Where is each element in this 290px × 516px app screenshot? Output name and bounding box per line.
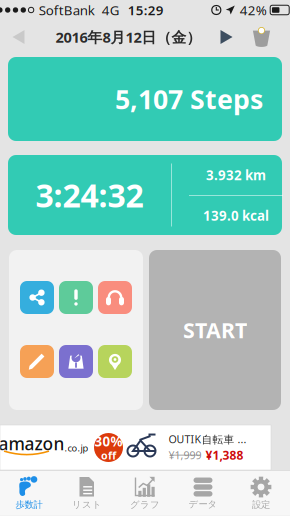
staticText: 139.0 kcal xyxy=(203,207,269,224)
staticText: 30% xyxy=(94,433,122,450)
button[interactable]: Amazon advertisement xyxy=(0,425,271,470)
button[interactable]: Alert xyxy=(59,281,93,314)
staticText: 3.932 km xyxy=(206,166,266,184)
staticText: 設定 xyxy=(252,499,270,510)
staticText: 4G xyxy=(102,1,120,19)
button[interactable]: Music xyxy=(98,281,132,314)
staticText: 15:29 xyxy=(128,1,164,19)
staticText: 2016年8月12日（金） xyxy=(55,27,201,47)
button[interactable]: Location xyxy=(98,345,132,378)
button[interactable]: 歩数計 xyxy=(0,470,58,516)
button[interactable]: Next day xyxy=(209,20,243,54)
button[interactable]: Edit xyxy=(20,345,54,378)
button[interactable]: Delete xyxy=(243,20,279,54)
staticText: START xyxy=(183,316,247,344)
button[interactable]: Previous day xyxy=(0,20,38,54)
button[interactable]: Weight xyxy=(59,345,93,378)
staticText: 42% xyxy=(240,1,267,19)
staticText: 3:24:32 xyxy=(35,174,143,216)
button[interactable]: 設定 xyxy=(232,470,290,516)
staticText: amazon xyxy=(0,432,64,455)
button[interactable]: グラフ xyxy=(116,470,174,516)
staticText: 歩数計 xyxy=(15,499,42,510)
staticText: .co.jp xyxy=(64,442,88,454)
staticText: リスト xyxy=(72,499,102,510)
button[interactable]: START xyxy=(149,250,281,410)
button[interactable]: データ xyxy=(174,470,232,516)
staticText: グラフ xyxy=(130,499,160,510)
staticText: ¥1,388 xyxy=(205,447,243,463)
staticText: データ xyxy=(188,498,217,510)
staticText: OUTIK自転車 ... xyxy=(168,432,246,446)
staticText: ¥1,999 xyxy=(168,448,201,462)
button[interactable]: リスト xyxy=(58,470,116,516)
button[interactable]: Share xyxy=(20,281,54,314)
staticText: off xyxy=(101,448,116,462)
staticText: 5,107 Steps xyxy=(115,81,263,117)
staticText: SoftBank xyxy=(39,1,95,19)
